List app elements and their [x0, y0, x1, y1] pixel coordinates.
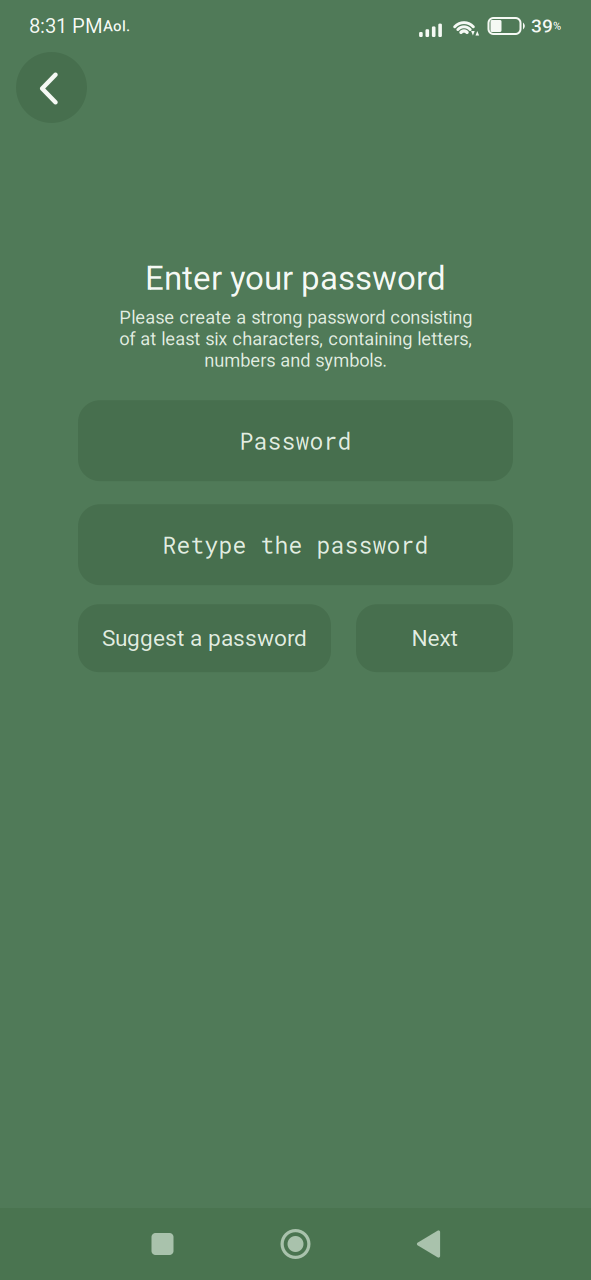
button[interactable]: Retype the password	[78, 504, 513, 585]
button[interactable]: Back	[362, 1208, 495, 1280]
button[interactable]: Home	[229, 1208, 362, 1280]
staticText: Password	[239, 425, 351, 456]
button[interactable]: Suggest a password	[78, 604, 331, 672]
staticText: %	[553, 19, 561, 32]
button[interactable]: Recent apps	[96, 1208, 229, 1280]
button[interactable]: Back	[16, 52, 87, 123]
staticText: Retype the password	[162, 529, 428, 560]
staticText: Aol.	[103, 17, 130, 35]
button[interactable]: Password	[78, 400, 513, 481]
staticText: Please create a strong password consisti…	[119, 307, 472, 371]
staticText: Next	[411, 625, 457, 651]
button[interactable]: Next	[356, 604, 513, 672]
staticText: Suggest a password	[102, 625, 307, 651]
staticText: Enter your password	[145, 259, 446, 298]
staticText: 39	[531, 15, 553, 37]
staticText: 8:31 PM	[29, 14, 103, 38]
